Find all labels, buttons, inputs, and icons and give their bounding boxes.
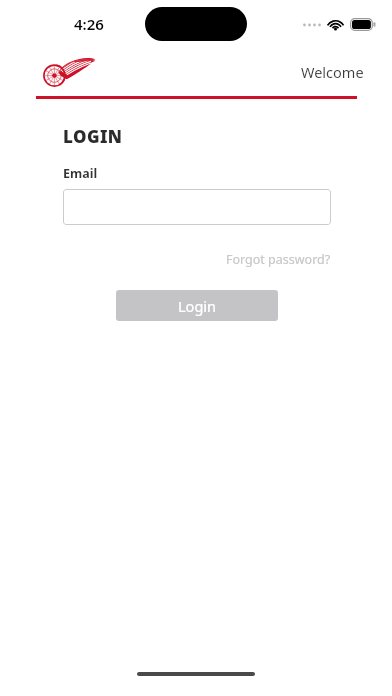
staticText: Login (178, 296, 216, 316)
button[interactable]: Forgot password? (226, 249, 331, 270)
staticText: Email (63, 165, 98, 182)
staticText: Welcome (301, 62, 364, 82)
button[interactable]: Detroit Red Wings logo (42, 57, 96, 87)
staticText: 4:26 (74, 14, 104, 34)
button[interactable]: Login (116, 290, 278, 321)
staticText: Forgot password? (226, 251, 331, 268)
button[interactable] (63, 189, 331, 225)
staticText: LOGIN (63, 125, 123, 148)
